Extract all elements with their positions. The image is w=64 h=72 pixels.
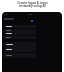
button[interactable]: [4, 25, 36, 28]
button[interactable]: [4, 36, 36, 39]
button[interactable]: [4, 53, 36, 58]
staticText: instantly using AI: [19, 4, 46, 8]
button[interactable]: [4, 42, 36, 47]
staticText: Create logos & icons: [17, 1, 48, 5]
button[interactable]: [4, 47, 36, 52]
button[interactable]: [4, 32, 36, 35]
button[interactable]: [4, 29, 36, 32]
